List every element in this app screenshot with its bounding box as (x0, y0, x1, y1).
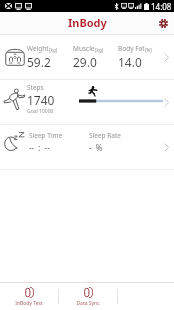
staticText: Sleep Time (29, 131, 63, 140)
button[interactable]: Data Sync (59, 283, 117, 310)
button[interactable]: InBody Test (0, 283, 58, 310)
staticText: Muscle (73, 44, 95, 53)
staticText: [kg] (95, 47, 104, 53)
staticText: InBody (68, 15, 107, 30)
staticText: Steps (27, 83, 44, 92)
staticText: [kg] (49, 47, 58, 53)
staticText: 14.0 (118, 54, 142, 70)
staticText: - % (89, 142, 103, 153)
button[interactable]: Settings (152, 12, 174, 35)
staticText: Body Fat (118, 44, 145, 53)
button[interactable]: Weight (0, 35, 174, 79)
staticText: 1740 (27, 92, 55, 108)
staticText: [%] (145, 47, 152, 53)
staticText: 14:08 (151, 1, 172, 12)
staticText: Sleep Rate (89, 131, 121, 140)
staticText: Data Sync (76, 300, 100, 307)
staticText: 29.0 (73, 54, 97, 70)
staticText: Goal 10000 (27, 108, 54, 115)
button[interactable]: Sleep Time (0, 125, 174, 169)
staticText: Weight (27, 44, 49, 53)
staticText: 59.2 (27, 54, 51, 70)
staticText: -- : -- (29, 142, 50, 153)
button[interactable]: Steps (0, 80, 174, 124)
staticText: InBody Test (15, 300, 43, 307)
